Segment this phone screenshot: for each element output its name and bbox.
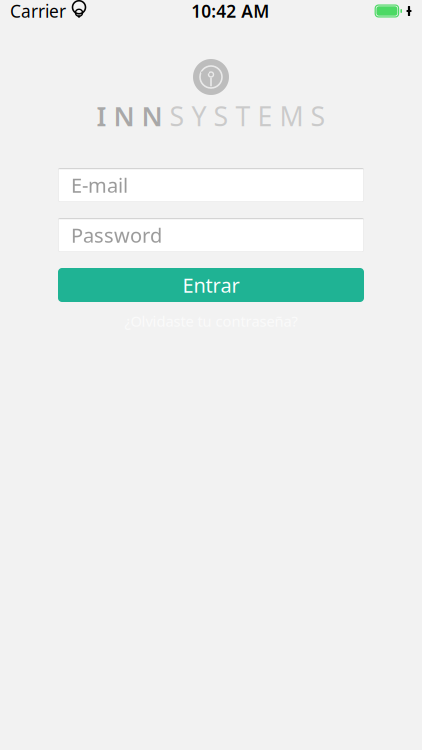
button[interactable]: Password — [58, 218, 364, 252]
staticText: Carrier — [10, 0, 66, 22]
staticText: Password — [71, 222, 162, 248]
staticText: S Y S T E M S — [162, 98, 325, 134]
staticText: 10:42 AM — [191, 0, 269, 22]
button[interactable]: Entrar — [58, 268, 364, 302]
staticText: E-mail — [71, 172, 128, 198]
staticText: Entrar — [182, 272, 239, 298]
staticText: I N N — [96, 98, 162, 134]
button[interactable]: E-mail — [58, 168, 364, 202]
